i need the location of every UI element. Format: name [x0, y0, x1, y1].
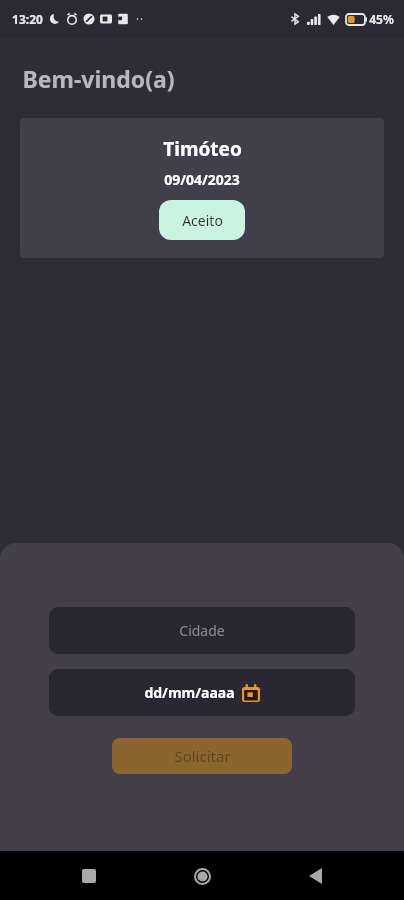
button[interactable]: Cidade: [49, 607, 355, 654]
button[interactable]: Recents: [65, 852, 113, 900]
button[interactable]: Home: [178, 852, 226, 900]
other: Selecionar data: [242, 684, 260, 702]
staticText: Cidade: [179, 621, 225, 640]
button[interactable]: Aceito: [159, 200, 245, 240]
button[interactable]: Timóteo: [20, 118, 384, 258]
button[interactable]: dd/mm/aaaa: [49, 669, 355, 716]
staticText: Timóteo: [163, 136, 242, 162]
staticText: Aceito: [182, 211, 223, 230]
button[interactable]: Solicitar: [112, 738, 292, 774]
staticText: 13:20: [12, 11, 43, 27]
staticText: Solicitar: [174, 746, 231, 766]
staticText: 45%: [369, 11, 394, 27]
staticText: dd/mm/aaaa: [144, 683, 235, 702]
staticText: 09/04/2023: [164, 170, 240, 189]
staticText: Bem-vindo(a): [22, 63, 175, 94]
button[interactable]: Back: [291, 852, 339, 900]
